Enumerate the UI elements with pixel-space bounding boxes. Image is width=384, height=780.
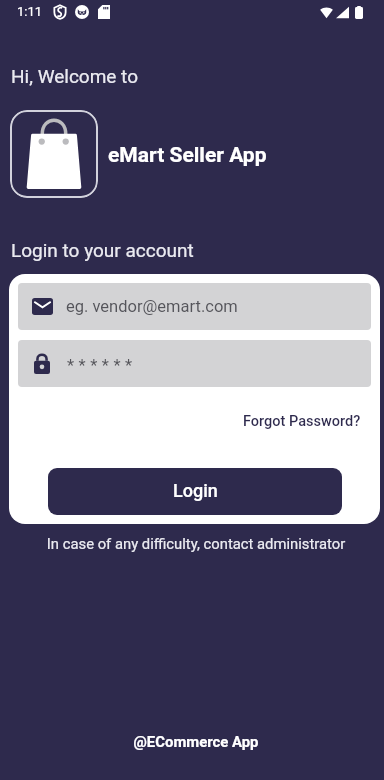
staticText: 1:11	[17, 4, 43, 19]
staticText: @ECommerce App	[4, 733, 384, 750]
button[interactable]: Login	[48, 468, 342, 515]
button[interactable]: Forgot Password?	[235, 387, 371, 438]
staticText: eMart Seller App	[108, 143, 267, 168]
staticText: In case of any difficulty, contact admin…	[4, 535, 384, 552]
staticText: Login to your account	[11, 239, 194, 261]
staticText: Login	[173, 480, 218, 501]
button[interactable]: * * * * * *	[18, 340, 371, 387]
staticText: eg. vendor@emart.com	[66, 297, 238, 316]
other: eMart Seller App logo	[10, 110, 98, 198]
button[interactable]: eg. vendor@emart.com	[18, 283, 371, 330]
staticText: Hi, Welcome to	[11, 65, 138, 87]
staticText: * * * * * *	[67, 356, 133, 375]
